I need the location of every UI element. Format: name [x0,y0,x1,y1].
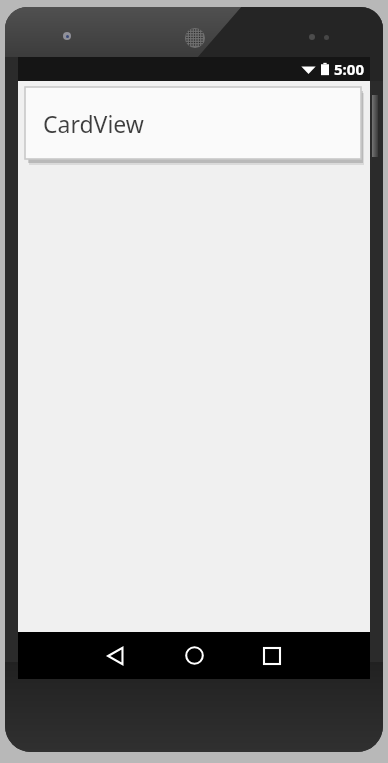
button[interactable]: Recent apps [233,632,311,679]
staticText: CardView [43,108,144,139]
button[interactable]: Back [77,632,155,679]
button[interactable]: CardView [25,87,361,159]
button[interactable]: Home [155,632,233,679]
staticText: 5:00 [334,59,364,79]
